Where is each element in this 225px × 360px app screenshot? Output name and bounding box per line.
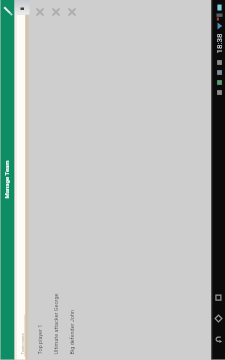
button[interactable]: Home — [211, 308, 225, 329]
staticText: Manage Team — [2, 159, 9, 198]
button[interactable]: Save team name — [14, 0, 29, 14]
button[interactable]: Top player 1 — [31, 0, 47, 359]
staticText: 18:38 — [214, 33, 223, 53]
button[interactable]: Ultimate attacker George — [47, 0, 63, 359]
staticText: Ultimate attacker George — [52, 24, 58, 354]
button[interactable]: Remove Top player 1 — [31, 0, 47, 24]
button[interactable]: Big defender John — [63, 0, 79, 359]
button[interactable]: Recent apps — [211, 287, 225, 308]
staticText: Top player 1 — [36, 24, 42, 354]
button[interactable]: Remove Ultimate attacker George — [47, 0, 63, 24]
button[interactable]: Edit team — [0, 0, 14, 23]
button[interactable]: Team name — [16, 14, 25, 359]
button[interactable]: Back — [211, 329, 225, 350]
button[interactable]: Remove Big defender John — [63, 0, 79, 24]
staticText: Team name — [19, 332, 24, 354]
staticText: Big defender John — [68, 24, 74, 354]
